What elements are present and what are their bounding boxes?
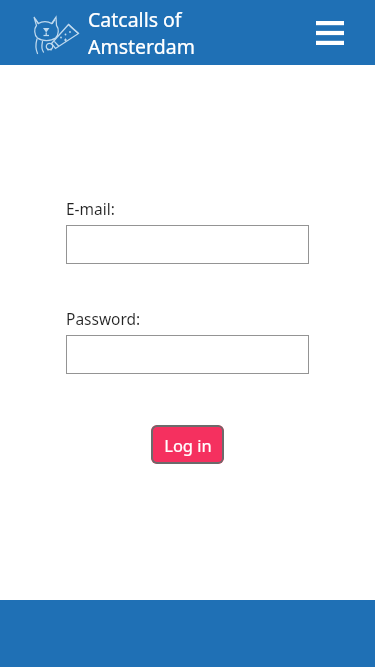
button[interactable]: Menu bbox=[310, 13, 350, 53]
staticText: Log in bbox=[164, 434, 212, 456]
staticText: Amsterdam bbox=[88, 33, 195, 60]
button[interactable]: Catcalls of bbox=[88, 6, 195, 60]
staticText: Password: bbox=[66, 308, 141, 329]
staticText: E-mail: bbox=[66, 198, 115, 219]
button[interactable]: Password input bbox=[66, 335, 309, 374]
button[interactable]: Catcalls of Amsterdam logo bbox=[30, 10, 82, 55]
button[interactable]: Log in bbox=[151, 425, 224, 464]
button[interactable]: E-mail input bbox=[66, 225, 309, 264]
staticText: Catcalls of bbox=[88, 6, 182, 33]
